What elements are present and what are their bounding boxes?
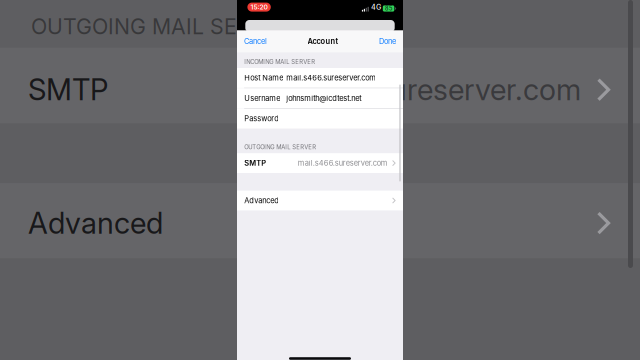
staticText: OUTGOING MAIL SERVER	[244, 143, 316, 151]
staticText: Done	[379, 37, 396, 46]
staticText: 15:20	[251, 3, 268, 11]
staticText: ureserver.com	[390, 72, 581, 107]
staticText: johnsmith@icdtest.net	[286, 94, 361, 103]
button[interactable]: Done	[372, 30, 403, 52]
staticText: Host Name	[244, 73, 283, 82]
staticText: mail.s466.sureserver.com	[286, 73, 376, 82]
staticText: OUTGOING MAIL SERVER	[31, 14, 292, 39]
staticText: 4G	[371, 3, 381, 12]
staticText: mail.s466.sureserver.com	[298, 159, 388, 168]
staticText: SMTP	[28, 72, 108, 107]
staticText: Advanced	[244, 196, 279, 205]
button[interactable]: Host Name	[237, 68, 403, 88]
staticText: Cancel	[244, 37, 267, 46]
staticText: 85	[385, 5, 392, 12]
staticText: INCOMING MAIL SERVER	[244, 58, 315, 65]
button[interactable]: Cancel	[237, 30, 274, 52]
staticText: Advanced	[28, 205, 163, 241]
button[interactable]: SMTP	[237, 153, 403, 173]
staticText: Password	[244, 114, 279, 123]
button[interactable]: Advanced	[237, 191, 403, 210]
button[interactable]: Username	[237, 88, 403, 108]
staticText: Account	[307, 37, 338, 46]
button[interactable]: Password	[237, 109, 403, 128]
staticText: SMTP	[244, 159, 266, 168]
staticText: Username	[244, 94, 280, 103]
